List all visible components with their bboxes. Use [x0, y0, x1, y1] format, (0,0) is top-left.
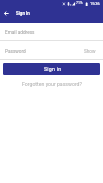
staticText: 71%	[76, 1, 83, 5]
button[interactable]: Back	[1, 8, 12, 19]
button[interactable]: Forgotten your password?	[0, 79, 103, 88]
staticText: Show	[84, 49, 96, 55]
staticText: Forgotten your password?	[22, 81, 82, 87]
staticText: Sign In	[16, 11, 30, 16]
staticText: Password	[5, 49, 26, 55]
staticText: Sign in	[44, 66, 62, 72]
button[interactable]: Sign in	[3, 63, 100, 75]
staticText: Email address	[5, 30, 35, 36]
button[interactable]: Show password	[84, 49, 96, 55]
staticText: 15:36	[90, 1, 100, 6]
